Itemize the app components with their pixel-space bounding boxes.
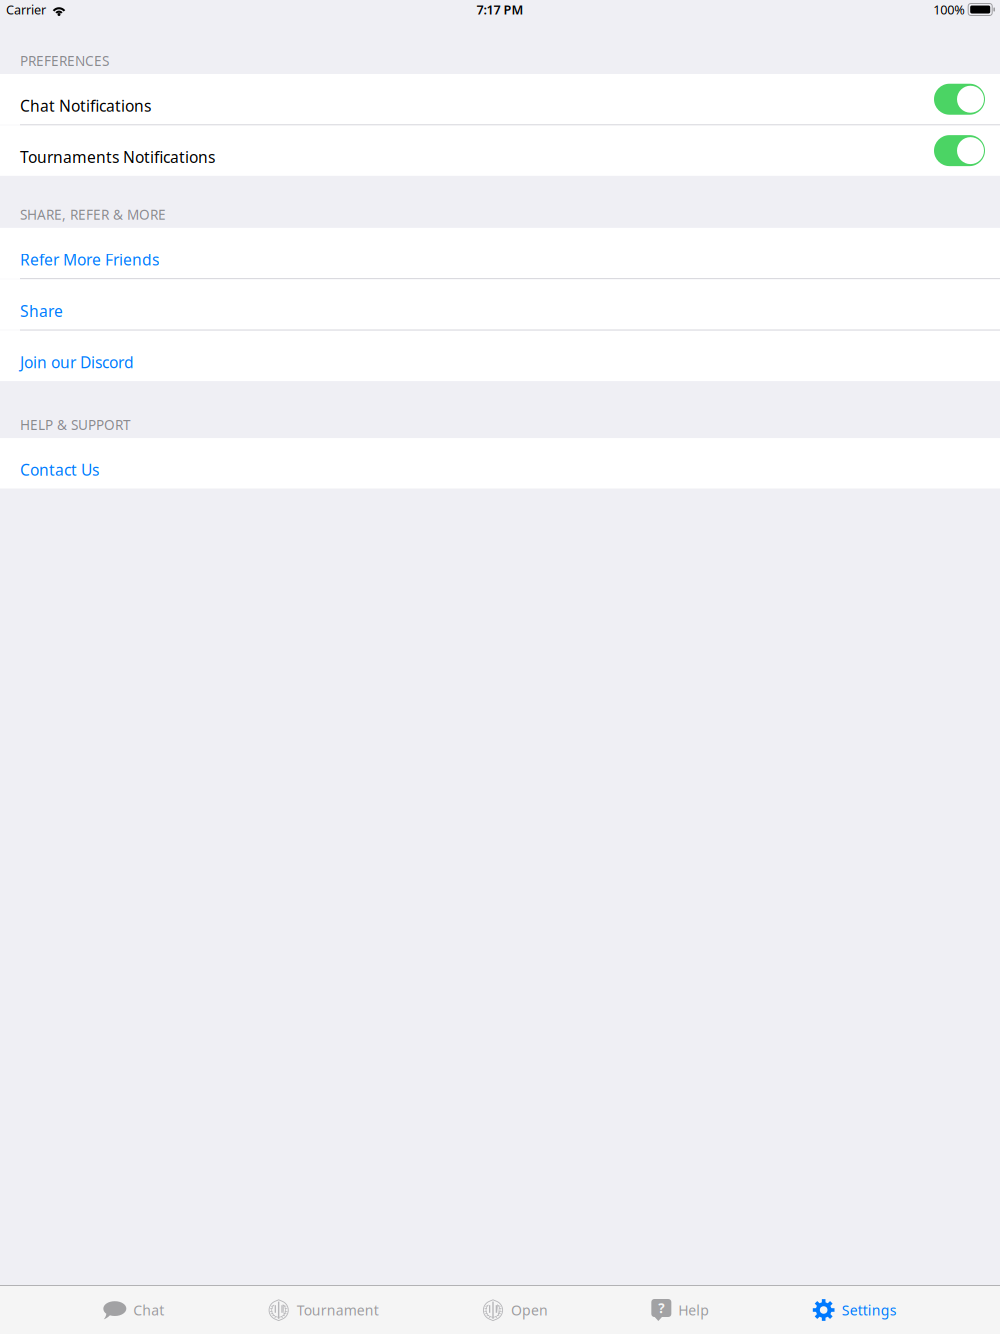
button[interactable]: Join our Discord bbox=[0, 331, 1000, 381]
staticText: Tournaments Notifications bbox=[20, 146, 215, 168]
button[interactable]: Chat bbox=[103, 1286, 164, 1334]
staticText: Tournament bbox=[297, 1300, 379, 1320]
staticText: HELP & SUPPORT bbox=[20, 415, 131, 434]
button[interactable]: Settings bbox=[813, 1286, 897, 1334]
button[interactable]: Chat Notifications bbox=[0, 74, 1000, 124]
staticText: Share bbox=[20, 300, 63, 321]
button[interactable]: Open bbox=[482, 1286, 548, 1334]
staticText: Help bbox=[678, 1300, 709, 1320]
staticText: PREFERENCES bbox=[20, 51, 109, 70]
button[interactable]: Contact Us bbox=[0, 438, 1000, 488]
button[interactable]: Share bbox=[0, 279, 1000, 330]
staticText: Carrier bbox=[6, 1, 46, 18]
staticText: Chat Notifications bbox=[20, 95, 151, 116]
staticText: SHARE, REFER & MORE bbox=[20, 205, 166, 224]
staticText: Refer More Friends bbox=[20, 249, 159, 270]
staticText: Join our Discord bbox=[20, 352, 134, 373]
button[interactable]: ? bbox=[651, 1286, 709, 1334]
button[interactable]: Tournament bbox=[268, 1286, 379, 1334]
staticText: Settings bbox=[842, 1300, 897, 1320]
button[interactable]: Refer More Friends bbox=[0, 228, 1000, 278]
button[interactable]: Tournaments Notifications bbox=[0, 125, 1000, 176]
staticText: 7:17 PM bbox=[477, 1, 524, 18]
staticText: Open bbox=[511, 1300, 548, 1320]
staticText: Contact Us bbox=[20, 459, 99, 480]
staticText: ? bbox=[658, 1299, 664, 1317]
staticText: 100% bbox=[933, 1, 965, 18]
staticText: Chat bbox=[133, 1300, 164, 1320]
